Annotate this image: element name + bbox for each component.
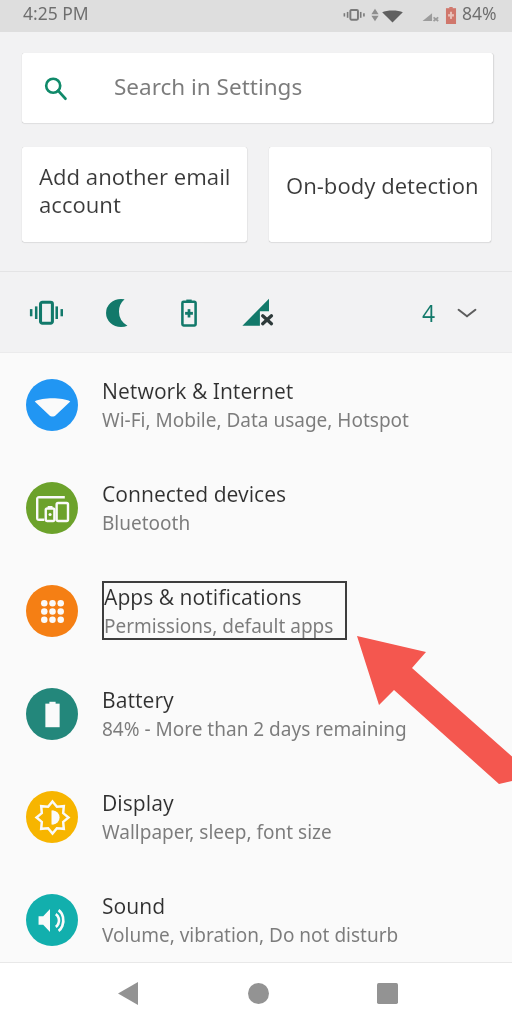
button[interactable]: Sound <box>0 868 512 971</box>
button[interactable]: Connected devices <box>0 456 512 559</box>
button[interactable]: Expand quick settings <box>455 272 512 353</box>
button[interactable]: Back <box>98 962 158 1024</box>
button[interactable]: On-body detection <box>269 147 491 242</box>
staticText: 84% - More than 2 days remaining <box>102 716 407 742</box>
staticText: Add another email account <box>39 161 231 219</box>
button[interactable]: Battery saver <box>168 272 210 353</box>
staticText: Display <box>102 789 174 818</box>
staticText: Connected devices <box>102 480 287 509</box>
staticText: Wallpaper, sleep, font size <box>102 819 332 845</box>
button[interactable]: Home <box>228 962 288 1024</box>
staticText: Search in Settings <box>114 71 303 102</box>
staticText: 4:25 PM <box>23 1 89 25</box>
button[interactable]: Do not disturb <box>98 272 144 353</box>
button[interactable]: Battery <box>0 662 512 765</box>
button[interactable]: Display <box>0 765 512 868</box>
button[interactable]: Apps & notifications <box>0 559 512 662</box>
staticText: 4 <box>422 297 436 328</box>
staticText: Network & Internet <box>102 377 294 406</box>
staticText: Sound <box>102 892 166 921</box>
button[interactable]: Recent apps <box>357 962 417 1024</box>
button[interactable]: Search in Settings <box>22 53 493 123</box>
button[interactable]: Vibrate <box>23 272 71 353</box>
staticText: Apps & notifications <box>104 583 302 612</box>
staticText: Permissions, default apps <box>104 613 334 639</box>
button[interactable]: Network & Internet <box>0 353 512 456</box>
button[interactable]: Mobile data off <box>235 272 282 353</box>
staticText: Battery <box>102 686 174 715</box>
staticText: Volume, vibration, Do not disturb <box>102 922 399 948</box>
staticText: 84% <box>462 1 497 25</box>
staticText: Bluetooth <box>102 510 191 536</box>
button[interactable]: Add another email account <box>22 147 247 242</box>
staticText: On-body detection <box>286 170 479 200</box>
staticText: Wi-Fi, Mobile, Data usage, Hotspot <box>102 407 409 433</box>
